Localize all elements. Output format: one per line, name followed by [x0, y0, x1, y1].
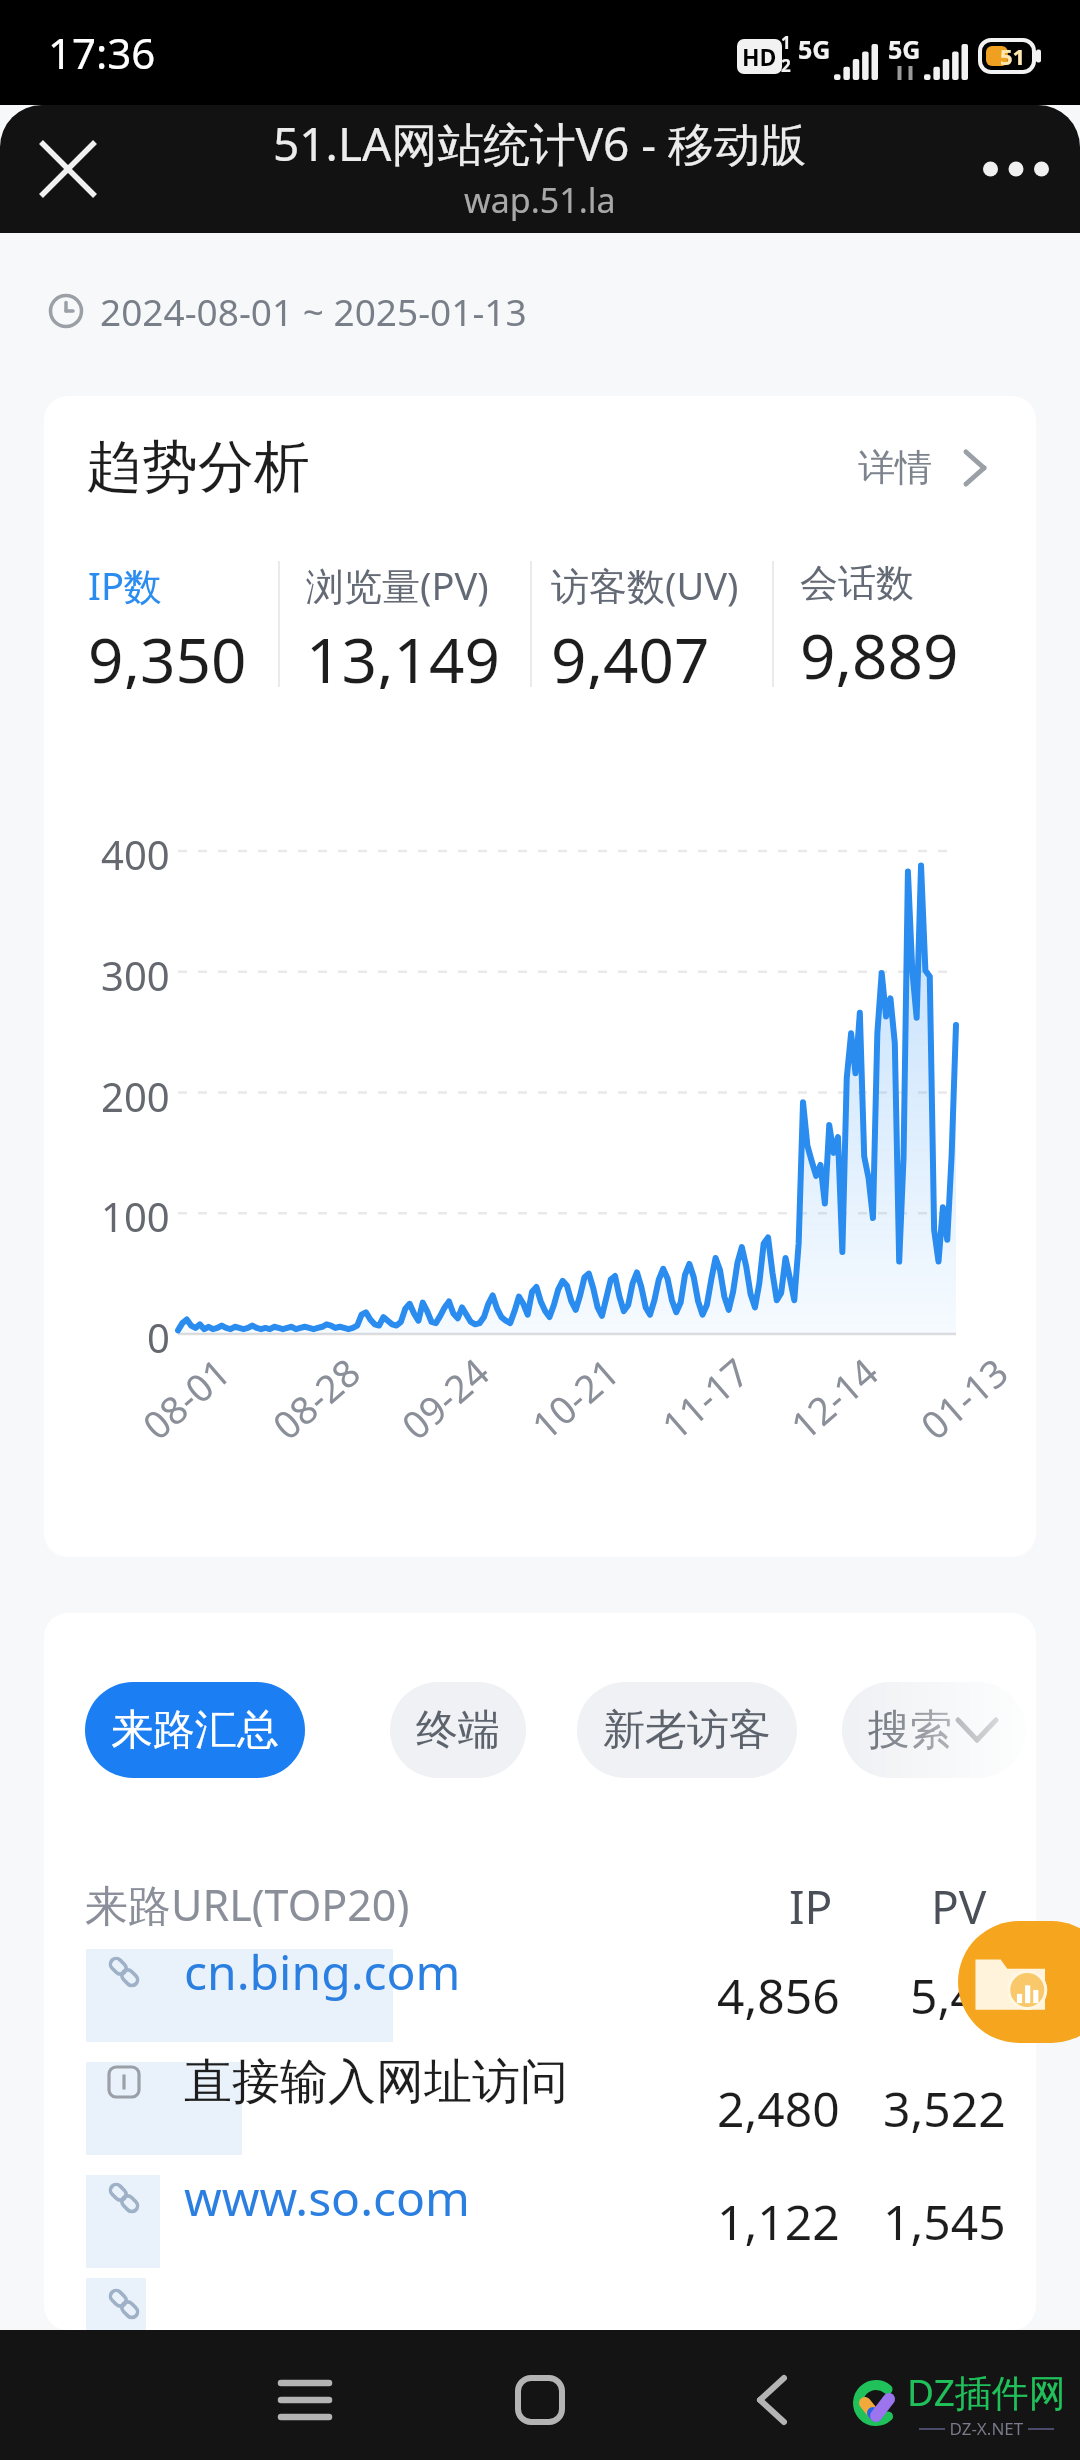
button[interactable]: Close	[18, 119, 118, 219]
button[interactable]: 详情	[858, 436, 986, 499]
staticText: 5G	[888, 32, 921, 66]
staticText: 100	[101, 1189, 170, 1243]
staticText: www.so.com	[184, 2165, 470, 2230]
staticText: IP	[789, 1875, 833, 1927]
staticText: 51.LA网站统计V6 - 移动版	[273, 112, 807, 175]
button[interactable]: 浏览量(PV)	[306, 559, 522, 689]
button[interactable]: cn.bing.com	[44, 1939, 1036, 2052]
button[interactable]: 来路汇总	[85, 1682, 305, 1778]
staticText: HD	[742, 41, 777, 72]
staticText: 5G	[798, 32, 831, 66]
staticText: 09-24	[390, 1346, 500, 1450]
button[interactable]	[44, 2278, 1036, 2330]
staticText: 12-14	[779, 1346, 889, 1450]
staticText: DZ插件网	[907, 2366, 1066, 2417]
staticText: 13,149	[306, 617, 500, 689]
button[interactable]: 直接输入网址访问	[44, 2052, 1036, 2165]
button[interactable]: 终端	[390, 1682, 526, 1778]
staticText: 08-28	[261, 1346, 371, 1450]
staticText: 终端	[416, 1704, 500, 1757]
staticText: 2024-08-01 ~ 2025-01-13	[100, 286, 527, 336]
staticText: 浏览量(PV)	[306, 559, 489, 611]
staticText: 9,350	[88, 617, 247, 689]
staticText: 3,522	[883, 2076, 1006, 2141]
staticText: 直接输入网址访问	[184, 2052, 568, 2112]
staticText: DZ-X.NET	[945, 2417, 1028, 2440]
staticText: 51	[1000, 41, 1026, 71]
staticText: 详情	[858, 444, 932, 491]
staticText: 5,49	[910, 1963, 1006, 2028]
button[interactable]: Report	[958, 1921, 1080, 2043]
staticText: 1	[781, 31, 791, 54]
staticText: 来路URL(TOP20)	[85, 1875, 410, 1927]
button[interactable]: Home	[485, 2345, 595, 2455]
staticText: 会话数	[800, 559, 914, 607]
staticText: 4,856	[717, 1963, 840, 2028]
staticText: 搜索	[868, 1704, 952, 1757]
button[interactable]: Recents	[250, 2345, 360, 2455]
staticText: 9,407	[551, 617, 710, 689]
staticText: 10-21	[520, 1346, 630, 1450]
staticText: wap.51.la	[464, 177, 616, 223]
button[interactable]: 访客数(UV)	[551, 559, 764, 689]
staticText: 2	[781, 54, 791, 77]
staticText: 400	[101, 827, 170, 881]
staticText: 17:36	[48, 24, 156, 81]
button[interactable]: 搜索	[842, 1682, 1026, 1778]
button[interactable]: IP数	[88, 559, 270, 689]
staticText: 200	[101, 1069, 170, 1123]
button[interactable]: More options	[966, 119, 1066, 219]
button[interactable]: 会话数	[800, 559, 1030, 689]
button[interactable]: 新老访客	[577, 1682, 797, 1778]
staticText: 9,889	[800, 613, 959, 689]
staticText: 01-13	[909, 1346, 1019, 1450]
button[interactable]: www.so.com	[44, 2165, 1036, 2278]
staticText: 2,480	[717, 2076, 840, 2141]
staticText: PV	[931, 1875, 987, 1927]
staticText: 11-17	[650, 1346, 760, 1450]
staticText: 新老访客	[603, 1704, 771, 1757]
staticText: 趋势分析	[86, 432, 310, 503]
staticText: 08-01	[131, 1346, 241, 1450]
staticText: IP数	[88, 559, 162, 611]
staticText: 0	[147, 1310, 170, 1364]
staticText: cn.bing.com	[184, 1939, 461, 2004]
staticText: 访客数(UV)	[551, 559, 739, 611]
staticText: 300	[101, 948, 170, 1002]
staticText: 1,122	[717, 2189, 840, 2254]
staticText: 1,545	[883, 2189, 1006, 2254]
button[interactable]: Back	[717, 2345, 827, 2455]
staticText: 来路汇总	[111, 1704, 279, 1757]
